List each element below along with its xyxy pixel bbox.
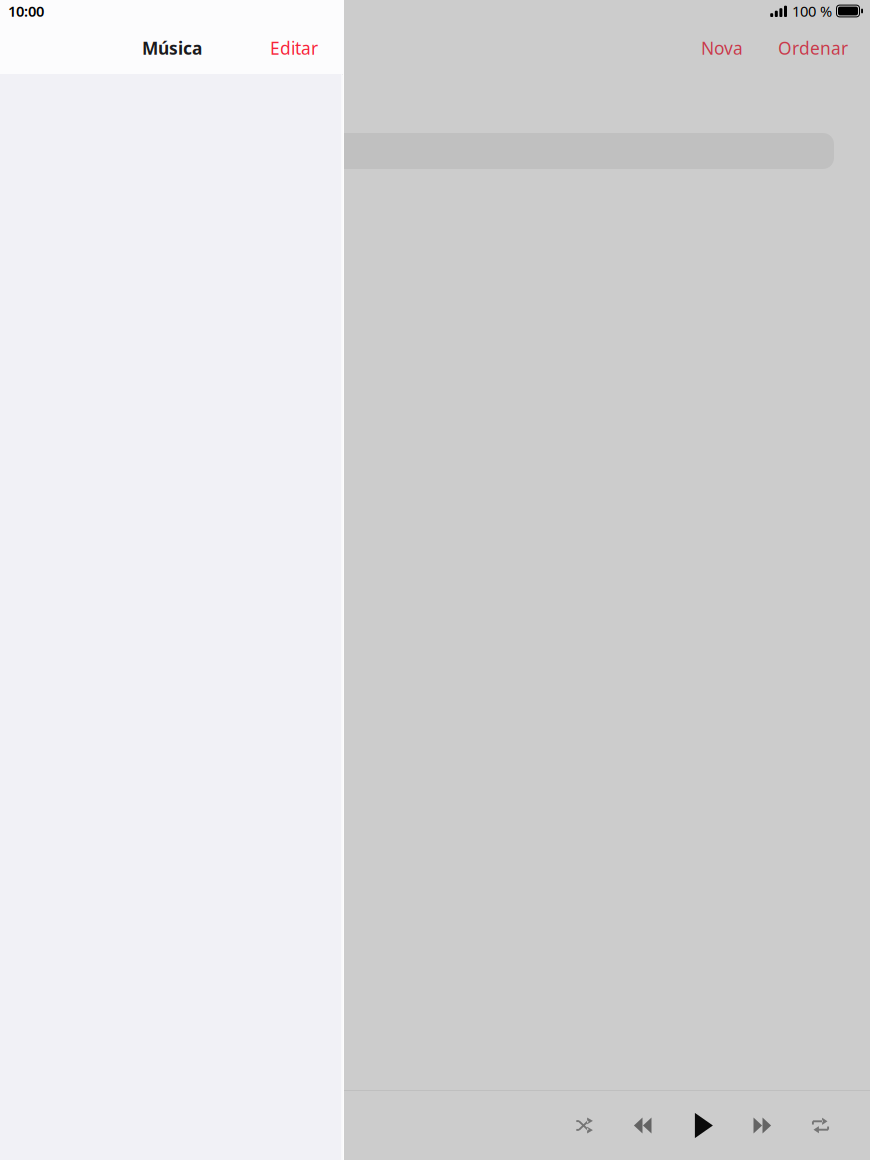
button[interactable]: Next	[745, 1110, 779, 1140]
button[interactable]: Previous	[625, 1110, 659, 1140]
button[interactable]: Shuffle	[569, 1110, 599, 1140]
staticText: Ordenar	[778, 36, 848, 59]
button[interactable]: Play	[685, 1108, 719, 1142]
button[interactable]: Editar	[260, 31, 328, 65]
staticText: Música	[142, 36, 202, 59]
staticText: Editar	[270, 36, 318, 59]
button[interactable]: Repeat	[805, 1110, 835, 1140]
button[interactable]: Ordenar	[767, 31, 859, 65]
staticText: 100 %	[792, 1, 832, 21]
staticText: Nova	[701, 36, 743, 59]
staticText: 10:00	[8, 1, 44, 21]
button[interactable]: Nova	[690, 31, 754, 65]
